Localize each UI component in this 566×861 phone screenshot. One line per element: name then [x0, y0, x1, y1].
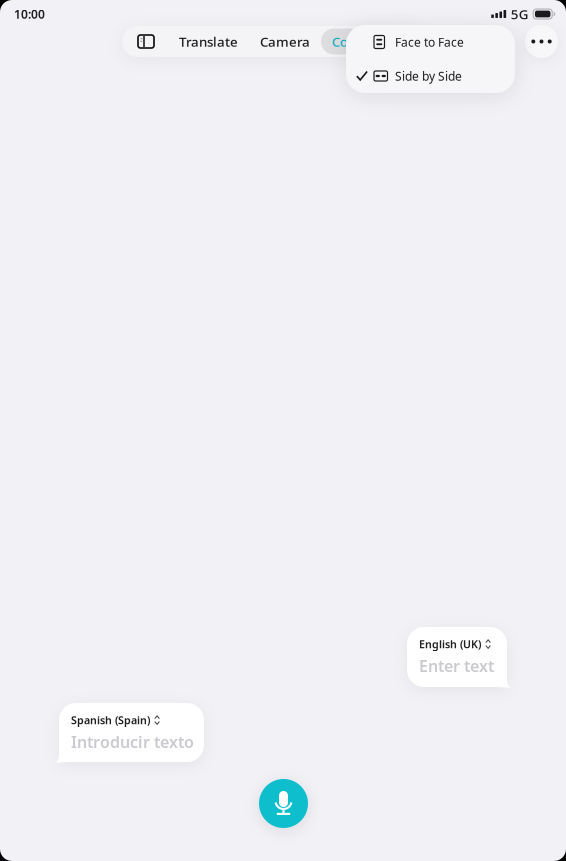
button[interactable]: Spanish (Spain): [71, 713, 160, 727]
staticText: Conversation: [332, 33, 416, 50]
staticText: Spanish (Spain): [71, 713, 150, 727]
staticText: Side by Side: [395, 68, 462, 84]
staticText: Face to Face: [395, 34, 464, 50]
button[interactable]: Spanish (Spain): [59, 703, 204, 762]
button[interactable]: English (UK): [419, 637, 491, 651]
staticText: 5G: [511, 5, 529, 23]
staticText: Camera: [260, 33, 310, 50]
button[interactable]: Face to Face: [346, 25, 515, 59]
button[interactable]: Conversation: [321, 28, 427, 54]
staticText: English (UK): [419, 637, 481, 651]
button[interactable]: More options: [525, 25, 558, 58]
button[interactable]: Camera: [249, 28, 321, 54]
button[interactable]: Translate: [168, 28, 249, 54]
button[interactable]: Side by Side: [346, 59, 515, 93]
staticText: 10:00: [14, 6, 45, 22]
button[interactable]: Start listening: [259, 779, 308, 828]
staticText: Translate: [179, 33, 238, 50]
staticText: Enter text: [419, 655, 494, 676]
button[interactable]: English (UK): [407, 627, 507, 687]
staticText: Introducir texto: [71, 731, 194, 752]
button[interactable]: Show sidebar: [124, 26, 168, 56]
